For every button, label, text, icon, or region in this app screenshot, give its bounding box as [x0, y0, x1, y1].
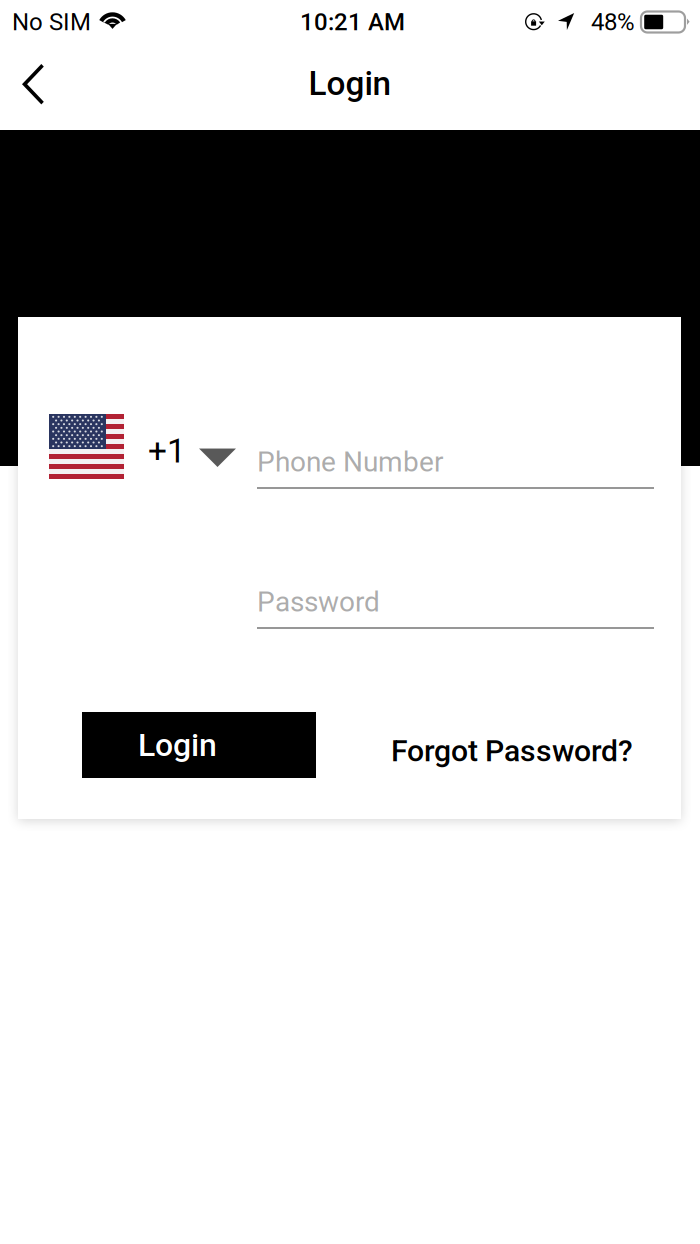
button[interactable]: Forgot Password? [391, 729, 633, 773]
staticText: Login [308, 64, 391, 103]
button[interactable]: Back [0, 44, 68, 130]
button[interactable]: Password [257, 588, 654, 629]
staticText: 10:21 AM [300, 8, 405, 36]
button[interactable]: Country code, United States, plus 1 [49, 414, 236, 479]
staticText: +1 [148, 431, 186, 471]
button[interactable]: Phone Number [257, 448, 654, 489]
staticText: 48% [591, 8, 635, 36]
staticText: No SIM [12, 8, 91, 36]
staticText: Forgot Password? [391, 733, 633, 769]
staticText: Login [138, 726, 217, 764]
button[interactable]: Login [82, 712, 316, 778]
staticText: Password [257, 586, 380, 618]
staticText: Phone Number [257, 446, 443, 478]
